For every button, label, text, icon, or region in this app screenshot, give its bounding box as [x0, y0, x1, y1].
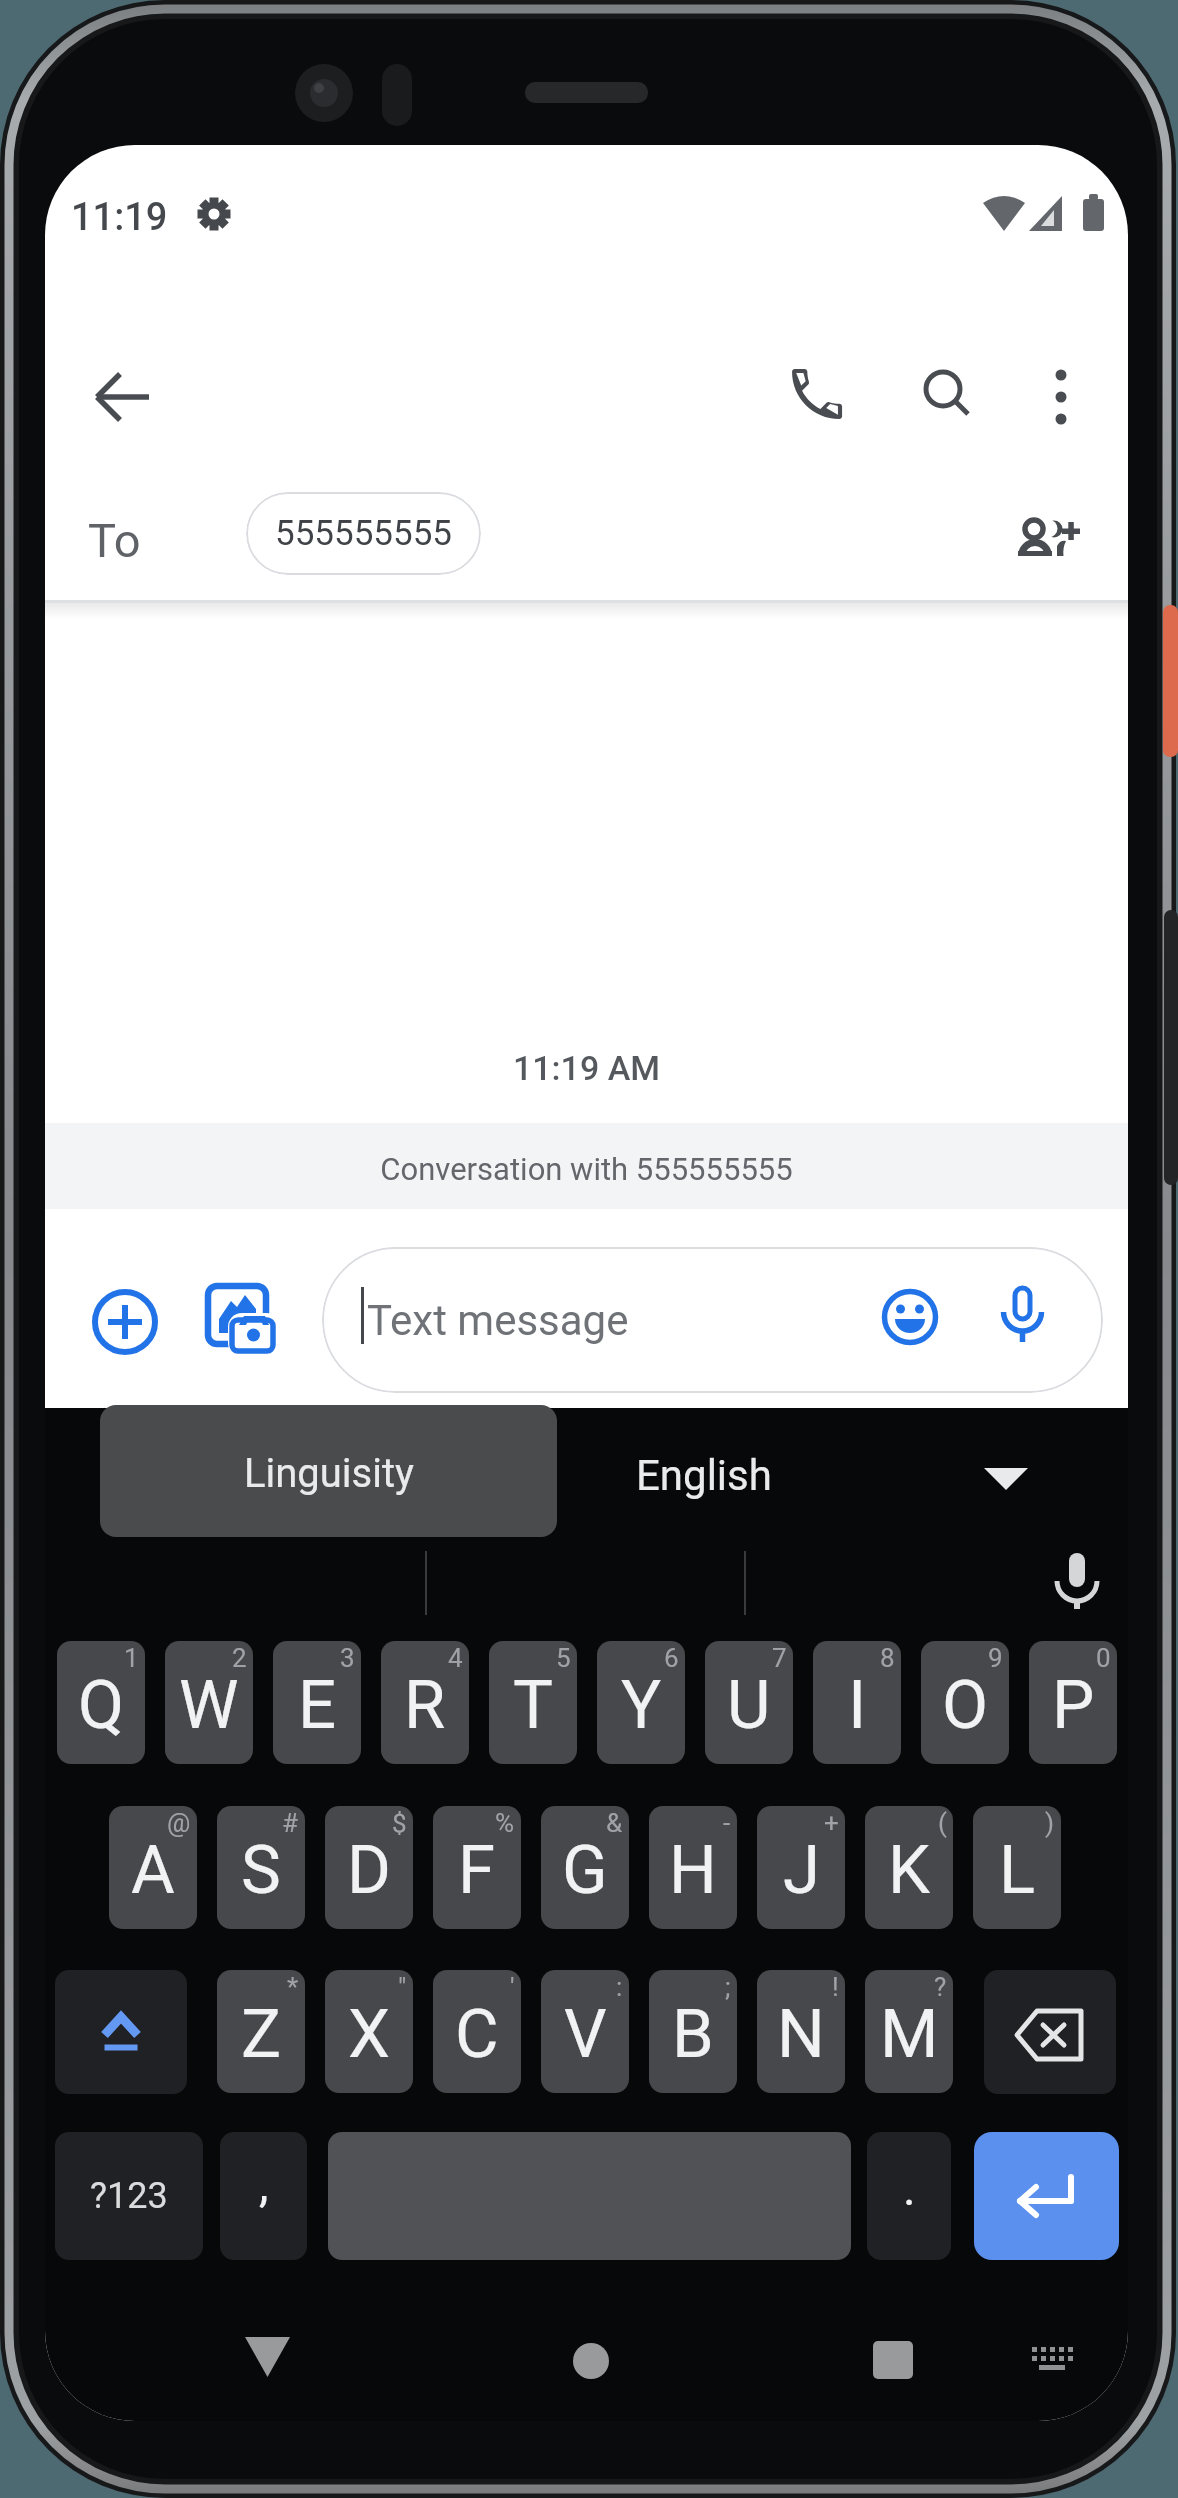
staticText: 4 — [448, 1643, 463, 1673]
staticText: M — [880, 1995, 939, 2074]
staticText: * — [287, 1972, 299, 2002]
button[interactable] — [93, 367, 153, 427]
staticText: A — [131, 1831, 175, 1910]
button[interactable] — [974, 2132, 1119, 2260]
staticText: F — [458, 1831, 496, 1910]
staticText: U — [727, 1666, 771, 1745]
staticText: . — [903, 2160, 916, 2216]
staticText: ?123 — [90, 2175, 168, 2217]
button[interactable]: G — [541, 1806, 629, 1929]
button[interactable]: V — [541, 1970, 629, 2093]
staticText: 0 — [1096, 1643, 1111, 1673]
button[interactable]: ?123 — [55, 2132, 203, 2260]
button[interactable] — [1030, 2341, 1080, 2381]
staticText: 2 — [232, 1643, 247, 1673]
staticText: @ — [167, 1808, 191, 1838]
button[interactable] — [206, 1283, 284, 1361]
button[interactable] — [883, 1290, 937, 1344]
staticText: J — [783, 1831, 820, 1910]
button[interactable] — [871, 2341, 915, 2383]
button[interactable]: M — [865, 1970, 953, 2093]
button[interactable]: F — [433, 1806, 521, 1929]
staticText: ! — [832, 1972, 839, 2002]
button[interactable]: I — [813, 1641, 901, 1764]
button[interactable] — [322, 1247, 1103, 1393]
button[interactable] — [1011, 513, 1083, 561]
button[interactable]: J — [757, 1806, 845, 1929]
staticText: D — [347, 1831, 391, 1910]
staticText: 11:19 AM — [45, 1048, 1128, 1088]
staticText: Y — [621, 1666, 662, 1745]
button[interactable]: D — [325, 1806, 413, 1929]
staticText: + — [824, 1808, 839, 1838]
button[interactable] — [605, 1425, 1085, 1515]
button[interactable]: K — [865, 1806, 953, 1929]
staticText: 5 — [556, 1643, 571, 1673]
staticText: ' — [510, 1972, 515, 2002]
button[interactable]: S — [217, 1806, 305, 1929]
button[interactable] — [571, 2341, 611, 2381]
staticText: 6 — [664, 1643, 679, 1673]
button[interactable] — [328, 2132, 851, 2260]
button[interactable]: R — [381, 1641, 469, 1764]
staticText: Linguisity — [244, 1450, 414, 1497]
staticText: 7 — [772, 1643, 787, 1673]
button[interactable]: X — [325, 1970, 413, 2093]
button[interactable]: Z — [217, 1970, 305, 2093]
button[interactable]: Y — [597, 1641, 685, 1764]
staticText: 8 — [880, 1643, 895, 1673]
staticText: H — [669, 1831, 717, 1910]
staticText: S — [241, 1831, 281, 1910]
staticText: 9 — [988, 1643, 1003, 1673]
staticText: T — [513, 1666, 553, 1745]
staticText: To — [88, 513, 141, 568]
button[interactable]: W — [165, 1641, 253, 1764]
button[interactable]: Linguisity — [100, 1405, 557, 1537]
staticText: # — [282, 1808, 299, 1838]
staticText: 11:19 — [71, 195, 168, 240]
button[interactable]: A — [109, 1806, 197, 1929]
staticText: English — [636, 1451, 772, 1500]
button[interactable] — [995, 1285, 1051, 1345]
button[interactable]: N — [757, 1970, 845, 2093]
button[interactable]: O — [921, 1641, 1009, 1764]
staticText: G — [562, 1831, 608, 1910]
button[interactable]: T — [489, 1641, 577, 1764]
staticText: K — [888, 1831, 931, 1910]
button[interactable]: H — [649, 1806, 737, 1929]
button[interactable] — [1035, 367, 1091, 427]
staticText: R — [404, 1666, 446, 1745]
button[interactable] — [984, 1970, 1116, 2094]
button[interactable]: U — [705, 1641, 793, 1764]
staticText: 1 — [124, 1643, 139, 1673]
button[interactable]: B — [649, 1970, 737, 2093]
staticText: Q — [78, 1666, 125, 1745]
staticText: O — [942, 1666, 989, 1745]
staticText: ) — [1045, 1808, 1055, 1838]
button[interactable]: 555555555 — [246, 492, 481, 575]
button[interactable] — [91, 1288, 159, 1356]
button[interactable] — [55, 1970, 187, 2094]
button[interactable]: E — [273, 1641, 361, 1764]
staticText: V — [564, 1995, 607, 2074]
button[interactable]: . — [867, 2132, 951, 2260]
staticText: : — [616, 1972, 623, 2002]
staticText: Text message — [367, 1296, 629, 1345]
staticText: 3 — [340, 1643, 355, 1673]
button[interactable] — [235, 2321, 301, 2381]
button[interactable] — [785, 360, 847, 422]
button[interactable]: P — [1029, 1641, 1117, 1764]
button[interactable]: , — [220, 2132, 307, 2260]
staticText: ; — [725, 1972, 731, 2002]
staticText: W — [179, 1666, 239, 1745]
staticText: C — [455, 1995, 499, 2074]
button[interactable] — [917, 365, 977, 425]
button[interactable] — [1048, 1545, 1108, 1615]
button[interactable]: L — [973, 1806, 1061, 1929]
staticText: $ — [392, 1808, 407, 1838]
staticText: X — [348, 1995, 391, 2074]
button[interactable]: C — [433, 1970, 521, 2093]
staticText: P — [1052, 1666, 1095, 1745]
button[interactable]: Q — [57, 1641, 145, 1764]
staticText: I — [848, 1666, 867, 1745]
